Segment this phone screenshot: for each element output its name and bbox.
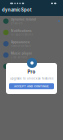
staticText: Notifications xyxy=(11,29,32,33)
staticText: Music player xyxy=(11,51,32,55)
staticText: Dynamic Island xyxy=(11,17,36,21)
staticText: Live activity xyxy=(11,56,27,59)
staticText: Upgrade to unlock all features xyxy=(10,77,53,80)
button[interactable]: ACCEPT AND CONTINUE xyxy=(9,83,54,89)
staticText: System default xyxy=(11,44,31,47)
button[interactable]: Notifications xyxy=(0,27,63,38)
staticText: Enabled xyxy=(11,22,23,25)
button[interactable]: About xyxy=(0,61,63,72)
staticText: ACCEPT AND CONTINUE xyxy=(14,85,49,88)
button[interactable]: Dynamic Island xyxy=(0,15,63,27)
staticText: dynamicSpot xyxy=(2,7,32,13)
button[interactable]: Appearance xyxy=(0,38,63,49)
staticText: Pro xyxy=(27,69,35,74)
button[interactable]: Music player xyxy=(0,49,63,61)
staticText: Appearance xyxy=(11,40,30,44)
